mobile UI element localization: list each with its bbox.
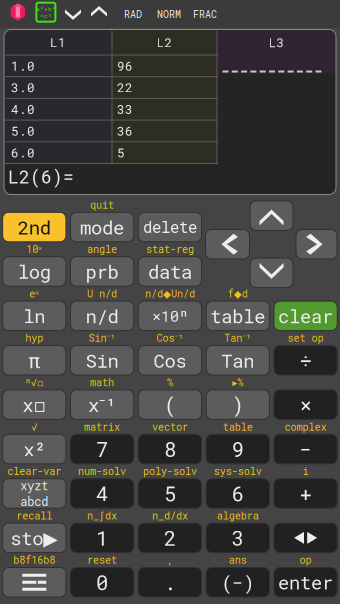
button[interactable]: clear bbox=[274, 301, 337, 331]
button[interactable]: x² bbox=[3, 434, 66, 464]
staticText: xyzt bbox=[20, 478, 48, 493]
button[interactable]: (−) bbox=[206, 567, 269, 597]
staticText: 2 bbox=[164, 524, 176, 551]
staticText: Tan bbox=[221, 348, 254, 373]
staticText: 8 bbox=[164, 435, 176, 462]
button[interactable]: x▫ bbox=[3, 390, 66, 419]
button[interactable]: sto▶ bbox=[3, 523, 66, 553]
staticText: x⁻¹ bbox=[88, 392, 116, 418]
staticText: FRAC bbox=[193, 7, 217, 21]
button[interactable]: . bbox=[138, 567, 201, 597]
staticText: complex bbox=[285, 420, 327, 433]
staticText: + bbox=[300, 480, 312, 507]
staticText: L3 bbox=[268, 34, 284, 51]
staticText: Sin bbox=[86, 348, 119, 373]
button[interactable]: 3 bbox=[206, 523, 269, 553]
button[interactable]: mode bbox=[70, 212, 134, 242]
staticText: vector bbox=[152, 420, 188, 433]
staticText: 5 bbox=[117, 144, 125, 161]
button[interactable]: 4 bbox=[70, 479, 134, 508]
button[interactable]: 2 bbox=[138, 523, 201, 553]
staticText: 96 bbox=[117, 58, 133, 74]
staticText: × bbox=[300, 391, 312, 418]
staticText: clear-var bbox=[7, 464, 61, 478]
staticText: delete bbox=[143, 217, 197, 237]
staticText: RAD bbox=[124, 7, 142, 21]
button[interactable]: 5 bbox=[138, 479, 201, 508]
staticText: ln bbox=[23, 303, 45, 328]
staticText: abcd bbox=[20, 493, 48, 509]
button[interactable]: 9 bbox=[206, 434, 269, 464]
button[interactable]: NORM bbox=[157, 7, 181, 21]
staticText: math bbox=[90, 376, 114, 389]
button[interactable]: 2nd bbox=[3, 212, 66, 242]
button[interactable]: Next bbox=[64, 4, 82, 22]
staticText: 6 bbox=[232, 480, 244, 507]
button[interactable]: 1 bbox=[70, 523, 134, 553]
button[interactable]: × bbox=[274, 390, 337, 419]
button[interactable]: ÷ bbox=[274, 345, 337, 375]
button[interactable]: log bbox=[3, 257, 66, 286]
staticText: 3.0 bbox=[11, 79, 35, 96]
staticText: reset bbox=[87, 553, 117, 567]
staticText: ) bbox=[232, 391, 244, 418]
button[interactable]: Sin bbox=[70, 345, 134, 375]
button[interactable]: Cos bbox=[138, 345, 201, 375]
button[interactable]: 0 bbox=[70, 567, 134, 597]
staticText: f◆d bbox=[228, 287, 248, 300]
staticText: 5.0 bbox=[11, 123, 35, 139]
button[interactable]: Tan bbox=[206, 345, 269, 375]
staticText: U n/d bbox=[87, 287, 117, 300]
staticText: L2(6)= bbox=[8, 165, 74, 188]
button[interactable]: ) bbox=[206, 390, 269, 419]
staticText: ÷ bbox=[300, 347, 312, 374]
button[interactable]: Down bbox=[250, 258, 293, 288]
button[interactable]: prb bbox=[70, 257, 134, 286]
button[interactable]: FRAC bbox=[193, 7, 217, 21]
button[interactable]: data bbox=[138, 257, 201, 286]
staticText: log bbox=[18, 259, 51, 284]
button[interactable]: x⁻¹ bbox=[70, 390, 134, 419]
button[interactable]: 8 bbox=[138, 434, 201, 464]
button[interactable]: 7 bbox=[70, 434, 134, 464]
button[interactable]: Menu bbox=[3, 567, 66, 597]
button[interactable]: enter bbox=[274, 567, 337, 597]
button[interactable]: Up bbox=[250, 201, 293, 230]
button[interactable]: Right bbox=[296, 229, 337, 259]
staticText: prb bbox=[86, 259, 119, 284]
staticText: b8f16b8 bbox=[13, 553, 55, 567]
button[interactable]: App icon bbox=[11, 3, 25, 21]
button[interactable]: ( bbox=[138, 390, 201, 419]
staticText: (−) bbox=[221, 570, 254, 595]
staticText: 9 bbox=[232, 435, 244, 462]
staticText: 0 bbox=[96, 569, 108, 596]
staticText: 1 bbox=[96, 524, 108, 551]
staticText: eˣ bbox=[29, 287, 39, 300]
button[interactable]: n/d bbox=[70, 301, 134, 331]
button[interactable]: + bbox=[274, 479, 337, 508]
button[interactable]: π bbox=[3, 345, 66, 375]
staticText: Tan⁻¹ bbox=[224, 331, 251, 345]
button[interactable]: ln bbox=[3, 301, 66, 331]
button[interactable]: xyzt bbox=[3, 479, 66, 508]
staticText: . bbox=[164, 569, 176, 596]
button[interactable]: ×10ⁿ bbox=[138, 301, 201, 331]
staticText: L2 bbox=[156, 34, 172, 51]
button[interactable]: RAD bbox=[124, 7, 142, 21]
staticText: 10ˣ bbox=[26, 242, 42, 256]
staticText: − bbox=[300, 435, 312, 462]
staticText: 5 bbox=[164, 480, 176, 507]
button[interactable]: table bbox=[206, 301, 269, 331]
button[interactable]: Insert bbox=[274, 523, 337, 553]
staticText: , bbox=[167, 553, 173, 567]
button[interactable]: Previous bbox=[90, 4, 108, 22]
staticText: 1.0 bbox=[11, 58, 35, 74]
staticText: Cos⁻¹ bbox=[156, 331, 183, 345]
button[interactable]: − bbox=[274, 434, 337, 464]
button[interactable]: Formulas bbox=[36, 3, 55, 22]
button[interactable]: delete bbox=[138, 212, 201, 242]
button[interactable]: Left bbox=[205, 229, 249, 259]
staticText: matrix bbox=[84, 420, 120, 433]
staticText: 3 bbox=[232, 524, 244, 551]
button[interactable]: 6 bbox=[206, 479, 269, 508]
